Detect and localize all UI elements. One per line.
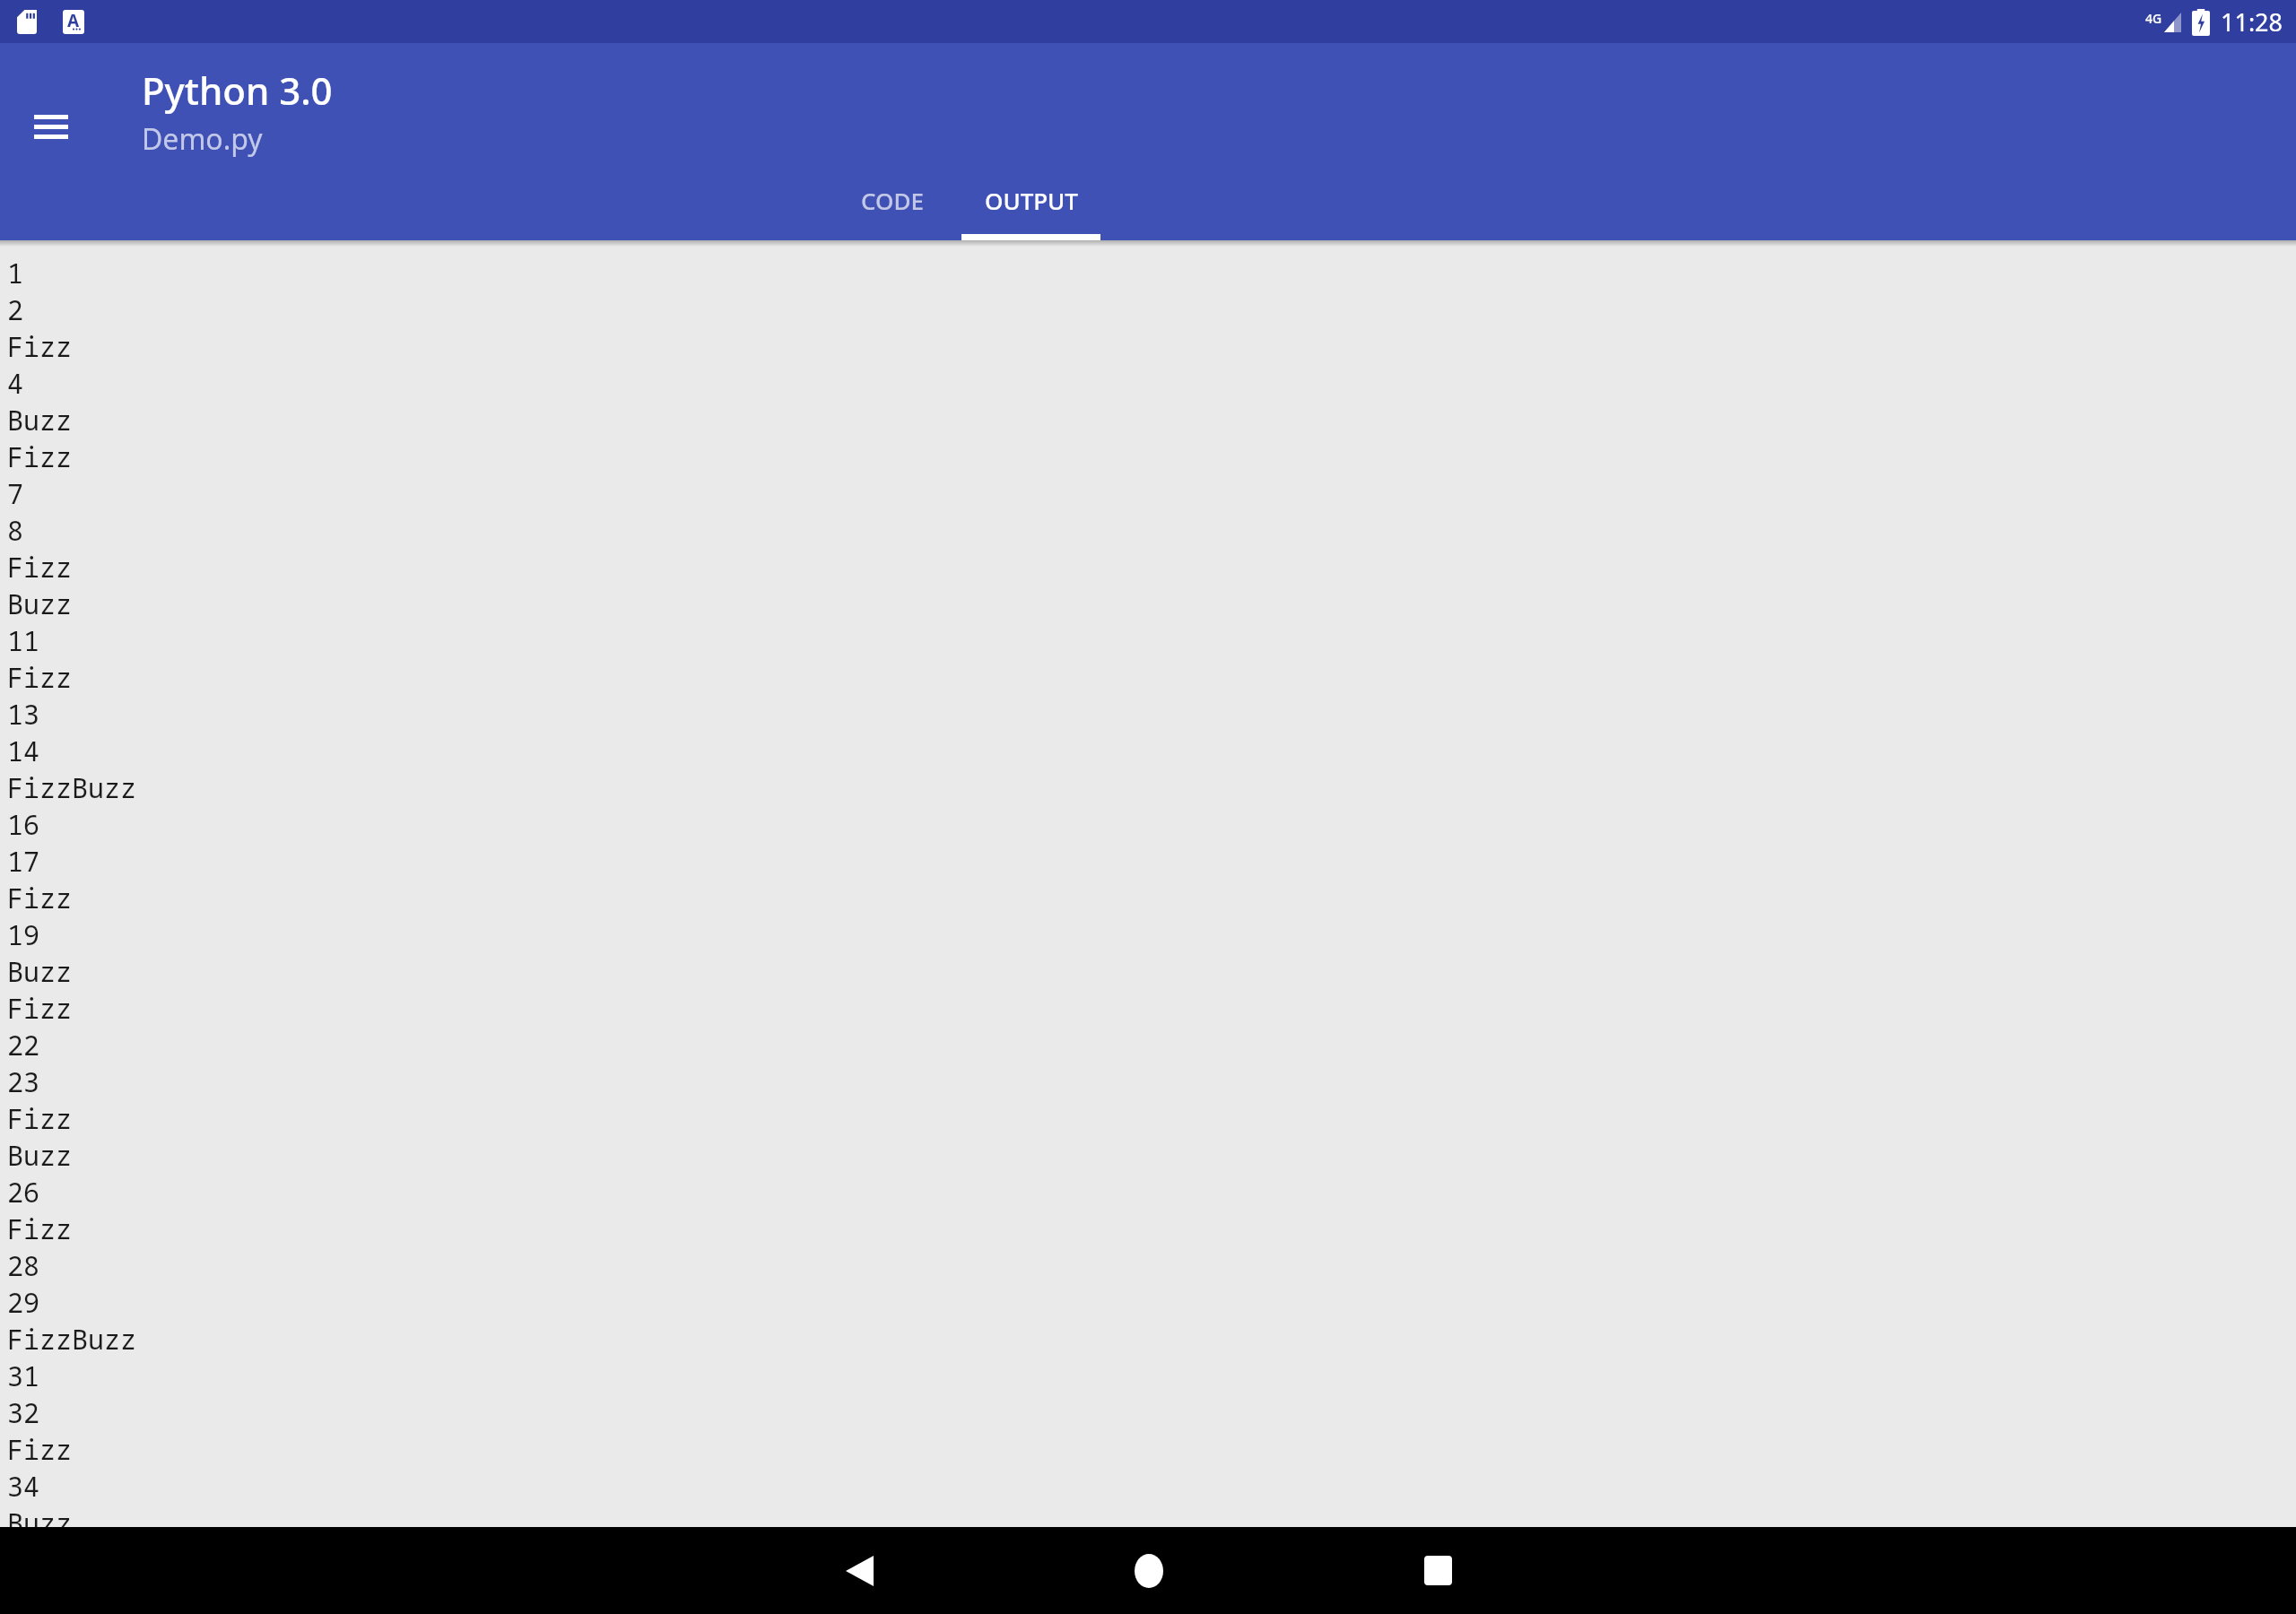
- button[interactable]: CODE: [822, 185, 961, 240]
- button[interactable]: Open navigation menu: [20, 95, 83, 158]
- staticText: Fizz: [7, 990, 72, 1027]
- staticText: Python 3.0: [142, 65, 333, 116]
- staticText: 7: [7, 475, 23, 512]
- staticText: A: [67, 9, 80, 32]
- staticText: Demo.py: [142, 119, 263, 159]
- staticText: 31: [7, 1358, 39, 1394]
- staticText: 4: [7, 365, 23, 402]
- staticText: Fizz: [7, 438, 72, 475]
- staticText: Buzz: [7, 953, 72, 990]
- staticText: Fizz: [7, 880, 72, 916]
- staticText: Fizz: [7, 659, 72, 696]
- staticText: Buzz: [7, 1137, 72, 1174]
- button[interactable]: Recent apps: [1393, 1527, 1483, 1614]
- staticText: 13: [7, 696, 39, 733]
- staticText: 2: [7, 291, 23, 328]
- staticText: Fizz: [7, 549, 72, 586]
- button[interactable]: Back: [814, 1527, 904, 1614]
- staticText: Buzz: [7, 586, 72, 622]
- staticText: 16: [7, 806, 39, 843]
- button[interactable]: OUTPUT: [961, 185, 1100, 240]
- staticText: Fizz: [7, 1210, 72, 1247]
- staticText: 17: [7, 843, 39, 880]
- staticText: 23: [7, 1063, 39, 1100]
- staticText: FizzBuzz: [7, 769, 136, 806]
- staticText: Fizz: [7, 328, 72, 365]
- staticText: 14: [7, 733, 39, 769]
- button[interactable]: Home: [1104, 1527, 1194, 1614]
- staticText: 22: [7, 1027, 39, 1063]
- staticText: CODE: [861, 185, 924, 216]
- staticText: 11: [7, 622, 39, 659]
- staticText: 32: [7, 1394, 39, 1431]
- staticText: Fizz: [7, 1100, 72, 1137]
- staticText: 29: [7, 1284, 39, 1321]
- staticText: 4G: [2145, 10, 2162, 27]
- staticText: Buzz: [7, 402, 72, 438]
- staticText: 19: [7, 916, 39, 953]
- staticText: 11:28: [2221, 5, 2283, 39]
- staticText: 1: [7, 255, 23, 291]
- staticText: 26: [7, 1174, 39, 1210]
- staticText: Fizz: [7, 1431, 72, 1468]
- staticText: 28: [7, 1247, 39, 1284]
- staticText: 34: [7, 1468, 39, 1505]
- staticText: OUTPUT: [985, 185, 1078, 216]
- staticText: FizzBuzz: [7, 1321, 136, 1358]
- staticText: Buzz: [7, 1505, 72, 1527]
- staticText: 8: [7, 512, 23, 549]
